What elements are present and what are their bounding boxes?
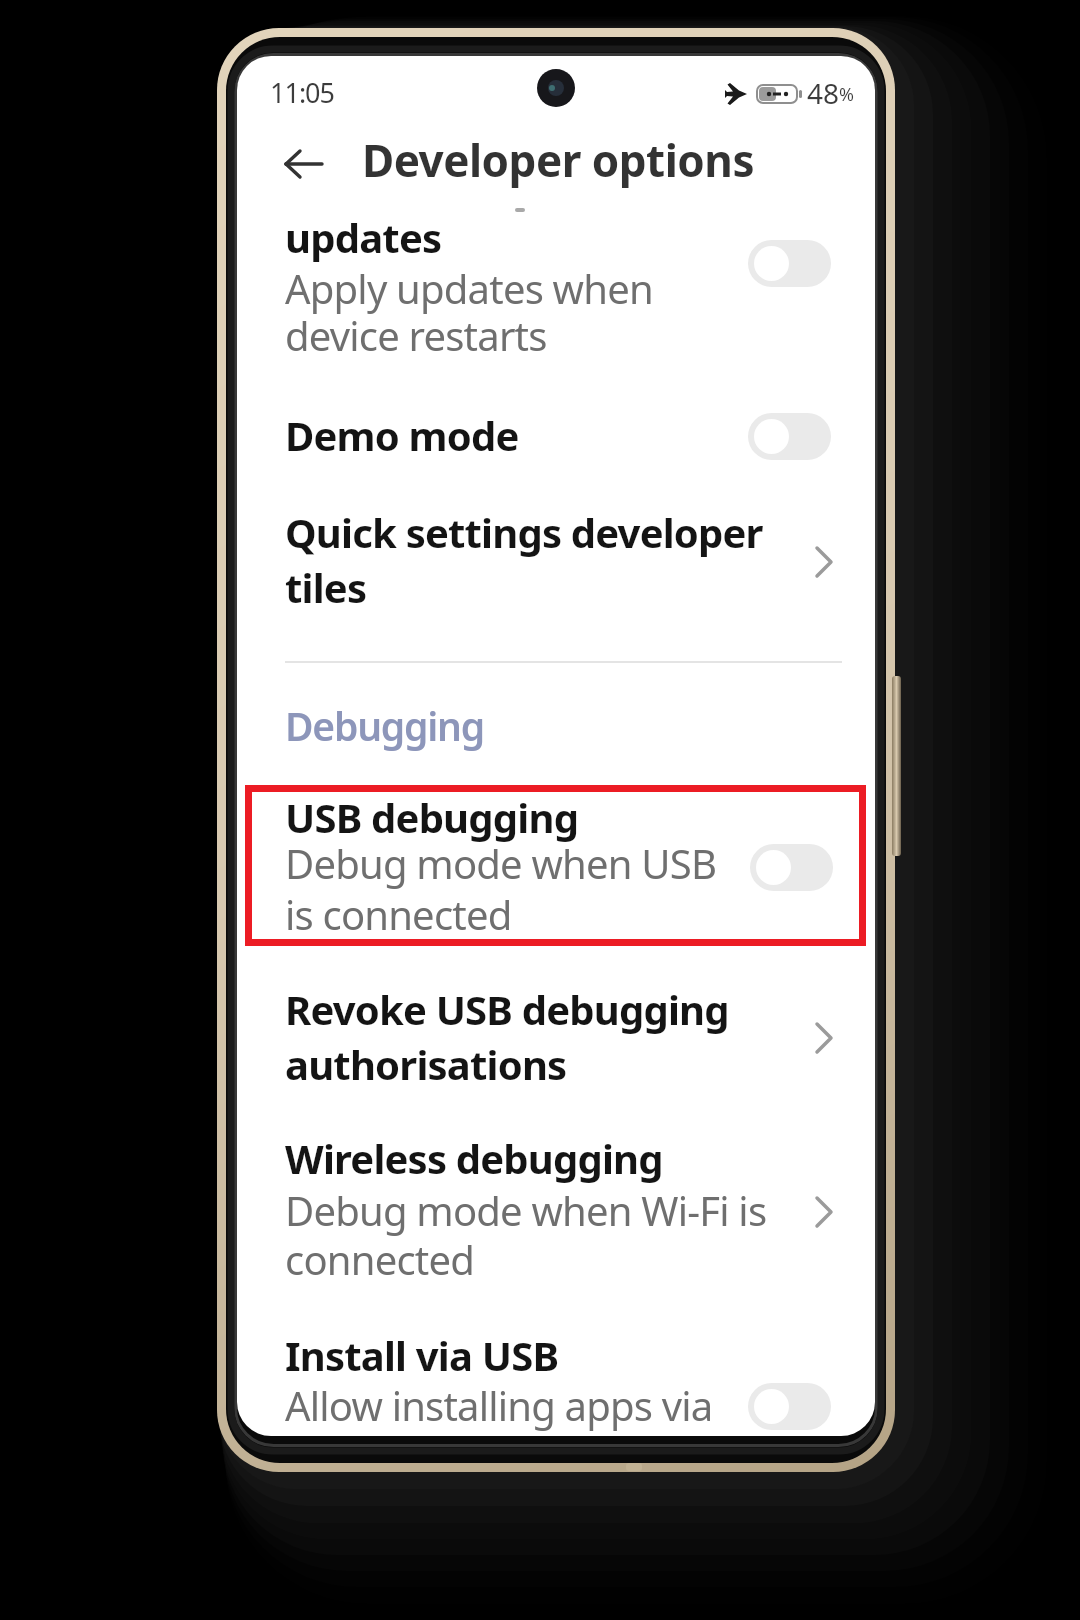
staticText: USB debugging bbox=[285, 790, 579, 844]
staticText: Debugging bbox=[285, 699, 485, 752]
button[interactable] bbox=[750, 844, 833, 891]
staticText: 11:05 bbox=[270, 74, 335, 111]
staticText: Debug mode when USB bbox=[285, 836, 717, 890]
button[interactable] bbox=[748, 413, 831, 460]
staticText: is connected bbox=[285, 887, 512, 941]
staticText: authorisations bbox=[285, 1037, 567, 1091]
button[interactable]: Install via USB bbox=[237, 1323, 875, 1433]
button[interactable] bbox=[748, 240, 831, 287]
staticText: Quick settings developer bbox=[285, 505, 763, 559]
button[interactable]: Demo mode bbox=[237, 403, 875, 465]
staticText: Debug mode when Wi-Fi is bbox=[285, 1183, 767, 1237]
staticText: device restarts bbox=[285, 308, 547, 362]
staticText: Wireless debugging bbox=[285, 1131, 663, 1185]
staticText: Allow installing apps via bbox=[285, 1378, 713, 1432]
staticText: updates bbox=[285, 210, 442, 264]
button[interactable]: Revoke USB debugging bbox=[237, 978, 875, 1093]
staticText: % bbox=[839, 82, 854, 107]
staticText: tiles bbox=[285, 560, 367, 614]
staticText: 48 bbox=[807, 74, 840, 112]
staticText: Developer options bbox=[362, 130, 755, 190]
staticText: Apply updates when bbox=[285, 261, 653, 315]
button[interactable]: Quick settings developer bbox=[237, 503, 875, 623]
staticText: Install via USB bbox=[285, 1328, 559, 1382]
staticText: Demo mode bbox=[285, 408, 519, 462]
button[interactable]: Wireless debugging bbox=[237, 1128, 875, 1288]
button[interactable] bbox=[267, 139, 342, 189]
staticText: connected bbox=[285, 1232, 474, 1286]
button[interactable]: USB debugging bbox=[237, 783, 875, 943]
button[interactable]: updates bbox=[237, 203, 875, 363]
button[interactable] bbox=[748, 1383, 831, 1430]
staticText: Revoke USB debugging bbox=[285, 982, 729, 1036]
